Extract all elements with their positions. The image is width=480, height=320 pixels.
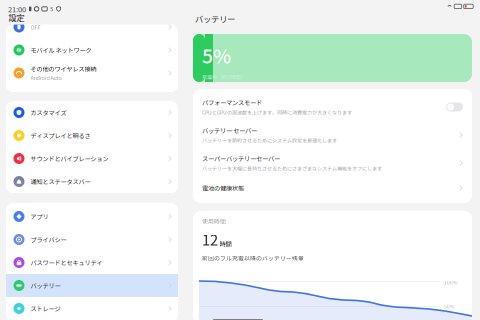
staticText: カスタマイズ xyxy=(30,108,66,117)
staticText: 前回のフル充電以降のバッテリー残量 xyxy=(202,254,304,262)
staticText: バッテリーを節約させるためにシステム設定を最適化します xyxy=(202,137,337,144)
staticText: サウンドとバイブレーション xyxy=(30,154,108,163)
staticText: 時間 xyxy=(219,239,231,248)
staticText: バッテリーを大幅に長持ちさせるためにさまざまなシステム機能をオフにします xyxy=(202,165,382,172)
button[interactable]: ディスプレイと明るさ xyxy=(6,124,178,147)
button[interactable]: ストレージ xyxy=(6,297,178,320)
button[interactable]: カスタマイズ xyxy=(6,101,178,124)
staticText: バッテリー セーバー xyxy=(202,126,257,135)
staticText: 100% xyxy=(444,279,457,286)
button[interactable]: バッテリー xyxy=(6,274,178,297)
staticText: モバイル ネットワーク xyxy=(30,46,91,54)
button[interactable]: OFF xyxy=(6,15,178,38)
button[interactable]: スーパーバッテリーセーバー xyxy=(193,149,472,177)
staticText: アプリ xyxy=(30,212,48,221)
button[interactable]: 通知とステータスバー xyxy=(6,170,178,193)
staticText: ストレージ xyxy=(30,304,60,313)
staticText: 充電中（約3時間） xyxy=(202,73,245,81)
staticText: ディスプレイと明るさ xyxy=(30,131,90,140)
staticText: スーパーバッテリーセーバー xyxy=(202,154,280,163)
staticText: その他のワイヤレス接続 xyxy=(30,64,96,73)
staticText: 設定 xyxy=(8,11,24,23)
staticText: OFF xyxy=(30,23,40,31)
staticText: バッテリー xyxy=(195,13,235,25)
button[interactable]: サウンドとバイブレーション xyxy=(6,147,178,170)
staticText: 21:00 xyxy=(8,3,26,14)
button[interactable]: モバイル ネットワーク xyxy=(6,38,178,61)
button[interactable]: パスワードとセキュリティ xyxy=(6,251,178,274)
button[interactable]: アプリ xyxy=(6,205,178,228)
staticText: バッテリー xyxy=(30,281,60,290)
staticText: Android Auto xyxy=(30,74,61,82)
button[interactable]: バッテリー セーバー xyxy=(193,121,472,149)
staticText: 電池の健康状態 xyxy=(202,183,244,193)
button[interactable]: 電池の健康状態 xyxy=(193,177,472,199)
staticText: プライバシー xyxy=(30,235,66,244)
staticText: 12 xyxy=(202,228,218,250)
staticText: 通知とステータスバー xyxy=(30,177,90,186)
staticText: パスワードとセキュリティ xyxy=(30,258,102,267)
staticText: CPUとGPUの周波数を上げます。同時に消費電力が大きくなります xyxy=(202,109,352,116)
button[interactable]: その他のワイヤレス接続 xyxy=(6,61,178,84)
staticText: 使用時間 xyxy=(202,217,226,225)
button[interactable]: プライバシー xyxy=(6,228,178,251)
staticText: パフォーマンスモード xyxy=(202,98,262,107)
staticText: 5% xyxy=(202,41,231,69)
staticText: 50% xyxy=(444,303,454,310)
button[interactable]: パフォーマンスモード xyxy=(193,93,472,121)
staticText: 5 xyxy=(50,5,53,13)
